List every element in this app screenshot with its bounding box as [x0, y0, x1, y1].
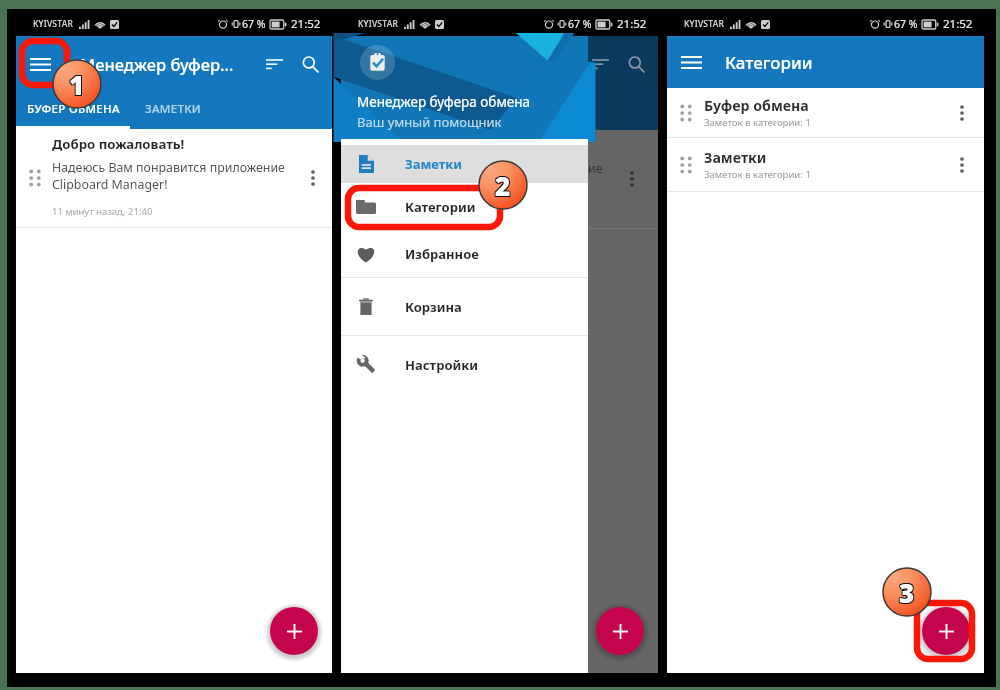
staticText: KYIVSTAR — [358, 18, 398, 30]
staticText: Категории — [405, 198, 476, 216]
button[interactable]: БУФЕР ОБМЕНА — [16, 92, 130, 126]
button[interactable]: Заметки — [667, 138, 984, 191]
staticText: Надеюсь Вам понравится приложение Clipbo… — [52, 159, 285, 193]
staticText: 1 — [69, 66, 85, 101]
button[interactable]: More options — [946, 97, 978, 129]
staticText: 3 — [898, 574, 914, 609]
staticText: Избранное — [405, 245, 479, 263]
button[interactable]: Корзина — [341, 278, 588, 335]
staticText: 2 — [494, 169, 510, 204]
staticText: 1 — [68, 67, 84, 102]
staticText: 1 — [70, 68, 86, 103]
staticText: 3 — [899, 574, 915, 609]
button[interactable]: Sort — [257, 47, 291, 81]
staticText: 21:52 — [943, 16, 973, 32]
staticText: 3 — [900, 575, 916, 610]
staticText: KYIVSTAR — [33, 18, 73, 30]
staticText: 1 — [70, 67, 86, 102]
staticText: KYIVSTAR — [684, 18, 724, 30]
button[interactable]: Open navigation menu — [18, 42, 62, 86]
staticText: 1 — [68, 66, 84, 101]
staticText: 21:52 — [617, 16, 647, 32]
staticText: 1 — [68, 68, 84, 103]
staticText: Заметок в категории: 1 — [704, 116, 811, 129]
button[interactable]: Избранное — [341, 230, 588, 277]
button[interactable]: Add — [270, 607, 318, 655]
button[interactable]: More options — [946, 149, 978, 181]
staticText: Заметок в категории: 1 — [704, 168, 811, 181]
button[interactable]: Категории — [341, 183, 588, 230]
button[interactable]: Буфер обмена — [667, 88, 984, 137]
staticText: ЗАМЕТКИ — [145, 101, 201, 117]
staticText: Категории — [725, 51, 813, 74]
staticText: ие — [588, 160, 603, 177]
staticText: 67 % — [242, 17, 266, 31]
staticText: 3 — [900, 576, 916, 611]
staticText: 67 % — [894, 17, 918, 31]
staticText: 3 — [899, 576, 915, 611]
staticText: 11 минут назад, 21:40 — [52, 205, 153, 218]
button[interactable]: Добро пожаловать! — [16, 129, 332, 227]
button[interactable]: Search — [291, 45, 329, 83]
button[interactable]: Заметки — [341, 145, 588, 183]
staticText: 1 — [69, 67, 85, 102]
staticText: 2 — [496, 167, 512, 202]
staticText: Менеджер буфер… — [80, 53, 257, 75]
button[interactable]: Add — [922, 607, 970, 655]
staticText: 2 — [496, 168, 512, 203]
button[interactable]: More options — [297, 162, 329, 194]
staticText: 67 % — [568, 17, 592, 31]
staticText: 3 — [898, 576, 914, 611]
staticText: 3 — [899, 575, 915, 610]
button[interactable]: Настройки — [341, 336, 588, 393]
staticText: Буфер обмена — [704, 96, 809, 115]
staticText: 2 — [494, 167, 510, 202]
staticText: Настройки — [405, 356, 478, 374]
staticText: 2 — [494, 168, 510, 203]
staticText: Корзина — [405, 298, 462, 316]
staticText: 21:52 — [291, 16, 321, 32]
button[interactable]: Open navigation menu — [669, 40, 713, 84]
staticText: 3 — [900, 574, 916, 609]
button[interactable]: ЗАМЕТКИ — [130, 92, 216, 126]
staticText: Менеджер буфера обмена — [357, 93, 531, 111]
staticText: 2 — [495, 168, 511, 203]
staticText: Ваш умный помощник — [357, 113, 502, 131]
staticText: 3 — [898, 575, 914, 610]
staticText: 1 — [69, 68, 85, 103]
staticText: 2 — [495, 169, 511, 204]
staticText: Добро пожаловать! — [52, 135, 185, 153]
staticText: Заметки — [405, 155, 463, 173]
staticText: БУФЕР ОБМЕНА — [27, 101, 120, 117]
staticText: 2 — [495, 167, 511, 202]
button[interactable]: Add — [596, 607, 644, 655]
button[interactable]: More options — [616, 163, 648, 195]
staticText: Заметки — [704, 148, 767, 167]
staticText: 1 — [70, 66, 86, 101]
staticText: 2 — [496, 169, 512, 204]
